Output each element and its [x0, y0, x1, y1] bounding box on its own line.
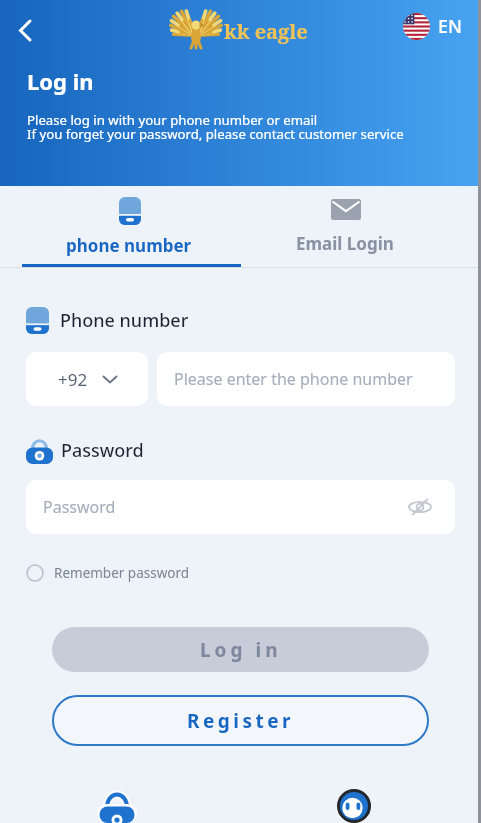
button[interactable] [97, 789, 137, 823]
button[interactable]: phone number [0, 186, 240, 264]
button[interactable] [337, 789, 381, 823]
button[interactable]: Log in [52, 627, 429, 672]
button[interactable]: Remember password [26, 564, 190, 582]
button[interactable]: Password [26, 480, 455, 534]
button[interactable]: +92 [26, 352, 148, 406]
staticText: Please log in with your phone number or … [27, 111, 404, 143]
staticText: Email Login [296, 232, 394, 255]
staticText: Remember password [54, 564, 190, 582]
staticText: Password [61, 438, 144, 463]
staticText: Log in [27, 66, 94, 96]
button[interactable]: Please enter the phone number [157, 352, 455, 406]
staticText: +92 [58, 368, 88, 391]
staticText: phone number [66, 234, 192, 257]
staticText: Phone number [60, 308, 189, 333]
button[interactable]: EN [403, 13, 462, 40]
staticText: Register [187, 708, 295, 734]
staticText: EN [438, 14, 462, 39]
staticText: Log in [200, 637, 282, 663]
staticText: Please enter the phone number [174, 368, 413, 390]
staticText: kk eagle [224, 18, 308, 45]
button[interactable]: Register [52, 695, 429, 746]
button[interactable] [5, 10, 45, 50]
button[interactable]: Email Login [240, 186, 481, 264]
staticText: Password [43, 496, 116, 518]
